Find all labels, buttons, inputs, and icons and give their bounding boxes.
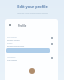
staticText: Jordan Smith [7, 39, 20, 41]
staticText: Profile [18, 24, 27, 27]
staticText: Location [7, 56, 16, 59]
button[interactable]: Account [5, 23, 58, 27]
button[interactable] [6, 48, 50, 53]
staticText: San Diego [7, 59, 17, 61]
staticText: Update your information below [17, 12, 48, 15]
staticText: Edit your profile [17, 4, 48, 9]
button[interactable]: Email [5, 41, 58, 47]
button[interactable]: Full name [5, 35, 58, 41]
staticText: jordan@mail.com [7, 45, 25, 47]
staticText: Email [7, 42, 13, 45]
staticText: Full name [7, 36, 17, 39]
button[interactable]: Location [5, 55, 58, 61]
